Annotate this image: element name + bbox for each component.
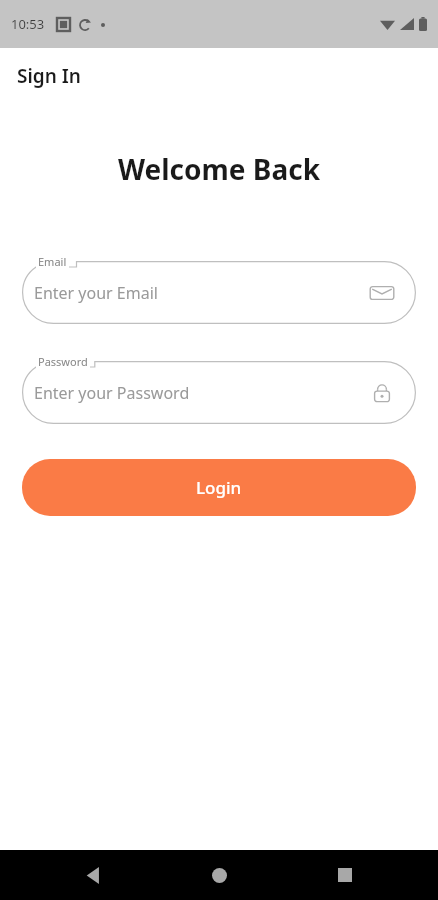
other: Password [368, 379, 396, 407]
staticText: Enter your Password [34, 382, 190, 404]
button[interactable]: Password [22, 361, 416, 424]
staticText: Password [38, 354, 88, 369]
staticText: Login [196, 476, 242, 499]
staticText: 10:53 [11, 15, 45, 33]
button[interactable]: Home [199, 855, 239, 895]
staticText: Email [38, 254, 67, 269]
button[interactable]: Back [73, 855, 113, 895]
button[interactable]: Recent apps [325, 855, 365, 895]
staticText: Sign In [17, 63, 81, 89]
button[interactable]: Email [22, 261, 416, 324]
staticText: Enter your Email [34, 282, 158, 304]
button[interactable]: Login [22, 459, 416, 516]
other: Email [368, 279, 396, 307]
staticText: Welcome Back [0, 150, 438, 188]
